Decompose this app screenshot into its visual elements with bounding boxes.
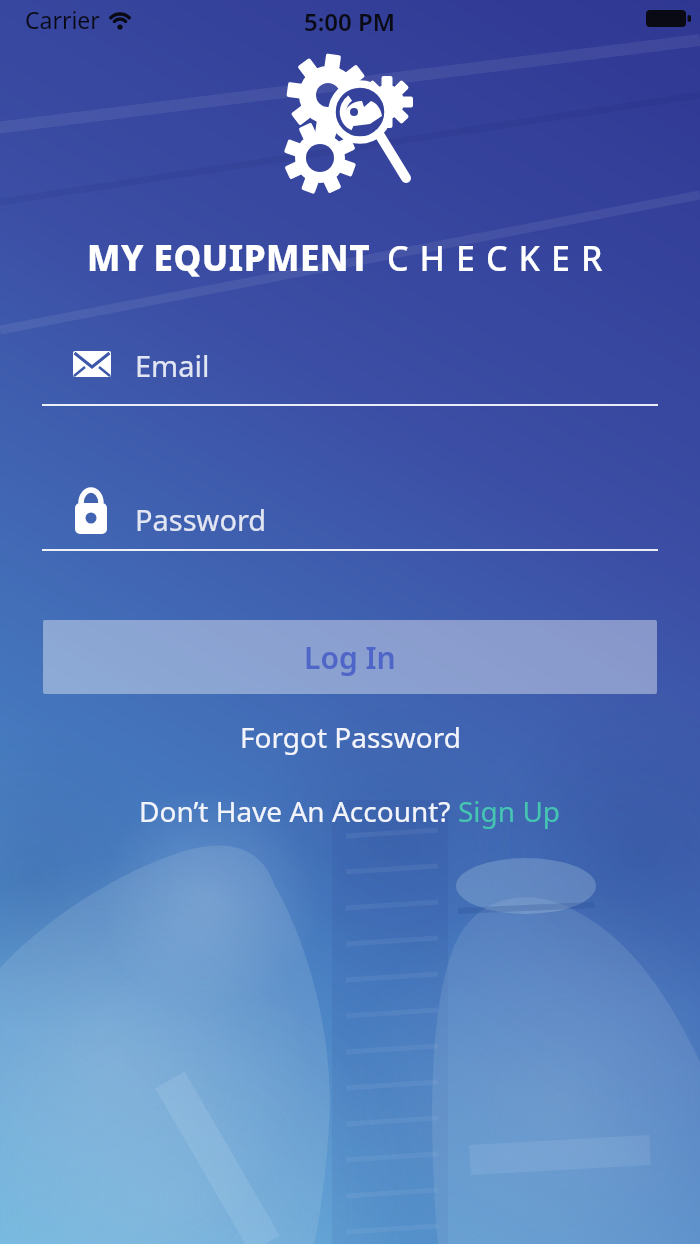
staticText: Password <box>135 500 267 539</box>
staticText: MY EQUIPMENT <box>87 234 371 282</box>
button[interactable]: Forgot Password <box>240 718 461 756</box>
button[interactable]: Password <box>42 478 658 552</box>
staticText: Sign Up <box>458 792 561 830</box>
button[interactable]: Email <box>42 330 658 408</box>
staticText: Don’t Have An Account? <box>139 792 458 830</box>
staticText: Carrier <box>25 4 100 35</box>
staticText: 5:00 PM <box>304 5 396 38</box>
staticText: Forgot Password <box>240 718 461 756</box>
staticText: Log In <box>304 637 396 678</box>
button[interactable]: Log In <box>43 620 657 694</box>
staticText: Email <box>135 346 210 385</box>
staticText: CHECKER <box>387 235 614 281</box>
button[interactable]: Sign Up <box>458 792 561 830</box>
